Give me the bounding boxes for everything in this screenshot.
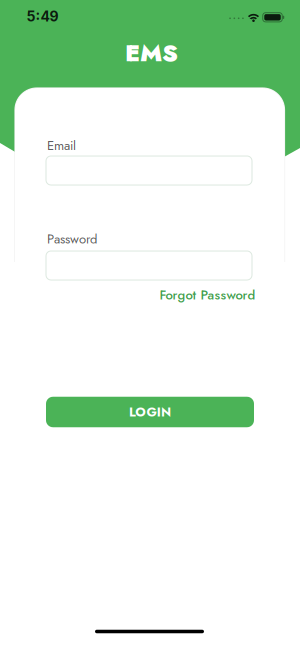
staticText: 5:49	[26, 8, 58, 25]
button[interactable]: Email	[46, 156, 252, 185]
staticText: LOGIN	[129, 403, 171, 421]
button[interactable]: Password	[46, 251, 252, 280]
button[interactable]: Forgot Password	[159, 285, 255, 305]
staticText: Password	[47, 230, 97, 248]
staticText: EMS	[125, 36, 178, 70]
staticText: Forgot Password	[159, 285, 255, 305]
staticText: Email	[47, 136, 76, 155]
button[interactable]: LOGIN	[46, 397, 254, 427]
